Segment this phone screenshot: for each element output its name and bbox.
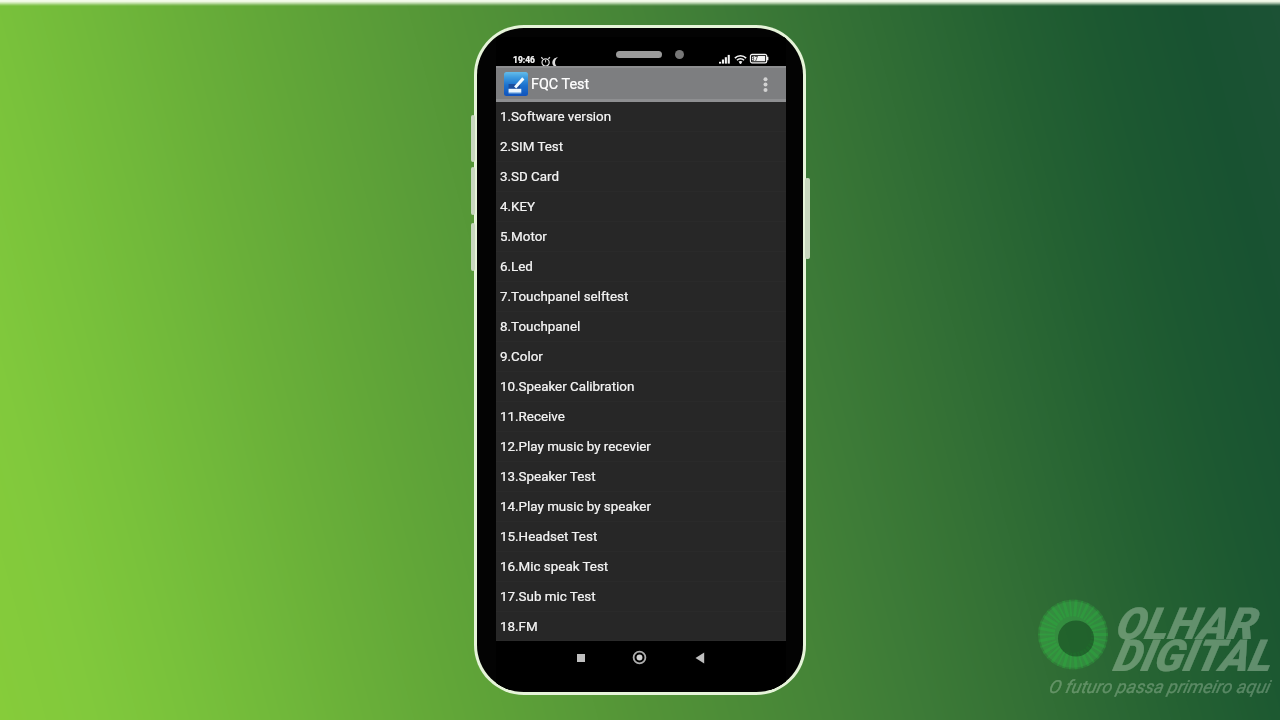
button[interactable]: 1.Software version — [496, 102, 786, 132]
staticText: 11.Receive — [500, 409, 565, 425]
button[interactable]: Home — [623, 641, 656, 674]
staticText: 9.Color — [500, 349, 543, 365]
button[interactable]: 17.Sub mic Test — [496, 582, 786, 612]
staticText: 15.Headset Test — [500, 529, 598, 545]
staticText: 17.Sub mic Test — [500, 589, 596, 605]
staticText: 7.Touchpanel selftest — [500, 289, 629, 305]
button[interactable]: Recents — [564, 641, 597, 674]
staticText: 3.SD Card — [500, 169, 560, 185]
button[interactable]: 18.FM — [496, 612, 786, 641]
button[interactable]: More options — [752, 66, 778, 102]
button[interactable]: 12.Play music by recevier — [496, 432, 786, 462]
button[interactable]: 3.SD Card — [496, 162, 786, 192]
staticText: 1.Software version — [500, 109, 612, 125]
staticText: DIGITAL — [1112, 630, 1271, 682]
staticText: 37 — [751, 55, 759, 62]
staticText: 16.Mic speak Test — [500, 559, 609, 575]
staticText: FQC Test — [531, 76, 590, 93]
staticText: 5.Motor — [500, 229, 547, 245]
button[interactable]: 6.Led — [496, 252, 786, 282]
staticText: 14.Play music by speaker — [500, 499, 651, 515]
staticText: 13.Speaker Test — [500, 469, 596, 485]
staticText: 6.Led — [500, 259, 533, 275]
staticText: OLHAR — [1114, 598, 1254, 650]
button[interactable]: 7.Touchpanel selftest — [496, 282, 786, 312]
button[interactable]: 10.Speaker Calibration — [496, 372, 786, 402]
button[interactable]: 2.SIM Test — [496, 132, 786, 162]
button[interactable]: 14.Play music by speaker — [496, 492, 786, 522]
button[interactable]: 5.Motor — [496, 222, 786, 252]
button[interactable]: 13.Speaker Test — [496, 462, 786, 492]
button[interactable]: 16.Mic speak Test — [496, 552, 786, 582]
button[interactable]: 8.Touchpanel — [496, 312, 786, 342]
button[interactable]: 15.Headset Test — [496, 522, 786, 552]
staticText: 2.SIM Test — [500, 139, 564, 155]
staticText: 18.FM — [500, 619, 538, 635]
staticText: 8.Touchpanel — [500, 319, 581, 335]
staticText: 12.Play music by recevier — [500, 439, 651, 455]
staticText: O futuro passa primeiro aqui — [1048, 676, 1270, 697]
button[interactable]: 9.Color — [496, 342, 786, 372]
staticText: 19:46 — [513, 55, 535, 65]
button[interactable]: 4.KEY — [496, 192, 786, 222]
button[interactable]: Back — [683, 641, 716, 674]
staticText: 10.Speaker Calibration — [500, 379, 635, 395]
button[interactable]: 11.Receive — [496, 402, 786, 432]
staticText: 4.KEY — [500, 199, 536, 215]
